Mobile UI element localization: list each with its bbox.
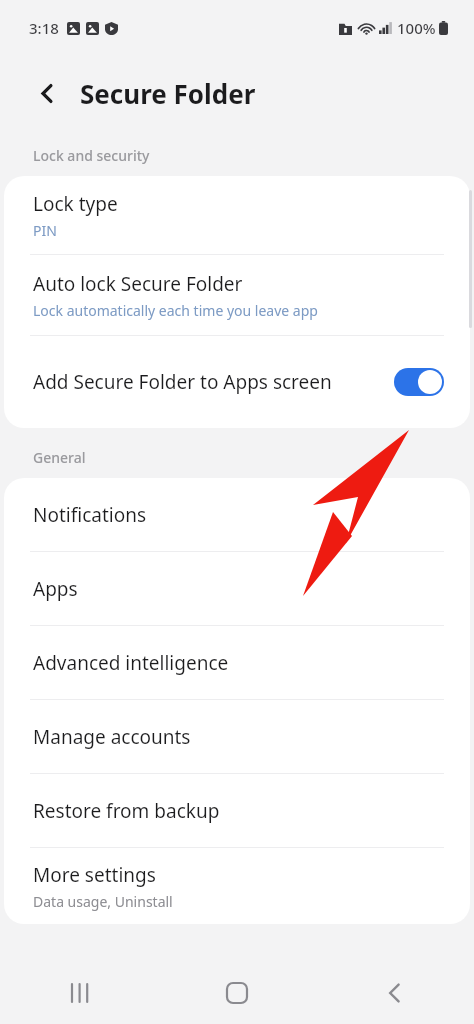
staticText: Lock and security bbox=[33, 146, 150, 165]
button[interactable]: Add Secure Folder to Apps screen toggle bbox=[394, 368, 444, 396]
staticText: Notifications bbox=[33, 502, 147, 528]
staticText: PIN bbox=[33, 221, 57, 240]
staticText: Data usage, Uninstall bbox=[33, 892, 173, 911]
button[interactable]: Recents bbox=[0, 962, 158, 1024]
button[interactable]: More settings bbox=[4, 848, 470, 924]
staticText: Secure Folder bbox=[80, 76, 256, 111]
button[interactable]: Lock type bbox=[4, 176, 470, 254]
staticText: Apps bbox=[33, 576, 78, 602]
staticText: Add Secure Folder to Apps screen bbox=[33, 369, 370, 395]
button[interactable]: Manage accounts bbox=[4, 700, 470, 773]
button[interactable]: Restore from backup bbox=[4, 774, 470, 847]
button[interactable]: Add Secure Folder to Apps screen bbox=[4, 336, 470, 428]
staticText: Manage accounts bbox=[33, 724, 191, 750]
staticText: Auto lock Secure Folder bbox=[33, 271, 243, 297]
staticText: More settings bbox=[33, 862, 156, 888]
button[interactable]: Home bbox=[158, 962, 316, 1024]
staticText: Restore from backup bbox=[33, 798, 220, 824]
staticText: Lock automatically each time you leave a… bbox=[33, 301, 318, 320]
staticText: 100% bbox=[397, 18, 436, 38]
staticText: General bbox=[33, 448, 86, 467]
button[interactable]: Auto lock Secure Folder bbox=[4, 255, 470, 335]
button[interactable]: Apps bbox=[4, 552, 470, 625]
button[interactable]: Back bbox=[316, 962, 474, 1024]
button[interactable]: Back bbox=[26, 72, 68, 114]
staticText: Advanced intelligence bbox=[33, 650, 229, 676]
staticText: 3:18 bbox=[29, 18, 59, 38]
staticText: Lock type bbox=[33, 191, 118, 217]
button[interactable]: Notifications bbox=[4, 478, 470, 551]
button[interactable]: Advanced intelligence bbox=[4, 626, 470, 699]
